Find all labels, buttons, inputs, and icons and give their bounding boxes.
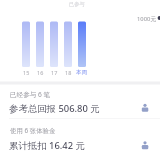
staticText: 累计抵扣 16.42 元 (9, 139, 85, 152)
other: Details (0, 0, 160, 160)
staticText: 15 (23, 69, 30, 76)
staticText: 17 (51, 69, 58, 76)
staticText: 已参与 (69, 1, 85, 8)
staticText: 1000元 (137, 15, 157, 23)
button[interactable]: 使用 6 张体验金 (0, 123, 160, 155)
staticText: 18 (65, 69, 72, 76)
staticText: 本周 (76, 69, 87, 76)
staticText: 16 (37, 69, 44, 76)
staticText: 已经参与 6 笔 (10, 90, 51, 99)
staticText: 使用 6 张体验金 (10, 126, 56, 135)
button[interactable]: 已经参与 6 笔 (0, 86, 160, 118)
staticText: 参考总回报 506.80 元 (9, 102, 100, 115)
